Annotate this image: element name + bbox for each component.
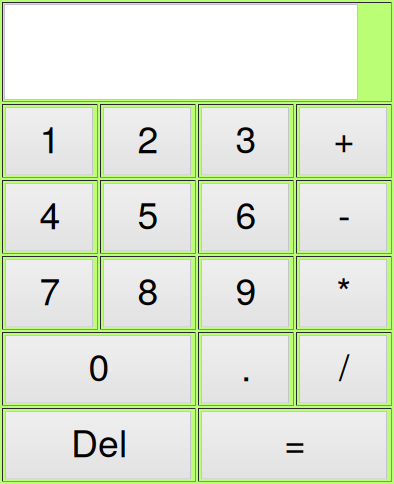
staticText: . (241, 338, 251, 392)
staticText: = (284, 414, 306, 468)
button[interactable]: 1 (0, 0, 394, 484)
staticText: 7 (39, 262, 60, 316)
button[interactable]: 5 (0, 0, 394, 484)
button[interactable]: / (0, 0, 394, 484)
staticText: 9 (235, 262, 256, 316)
staticText: 2 (137, 110, 158, 164)
button[interactable]: * (0, 0, 394, 484)
button[interactable]: 7 (0, 0, 394, 484)
button[interactable]: + (0, 0, 394, 484)
button[interactable]: 9 (0, 0, 394, 484)
button[interactable]: 2 (0, 0, 394, 484)
staticText: - (338, 186, 350, 240)
button[interactable]: 8 (0, 0, 394, 484)
button[interactable]: 3 (0, 0, 394, 484)
button[interactable]: 4 (0, 0, 394, 484)
staticText: 0 (88, 338, 109, 392)
button[interactable]: - (0, 0, 394, 484)
staticText: 6 (235, 186, 256, 240)
staticText: 5 (137, 186, 158, 240)
staticText: / (339, 338, 349, 392)
staticText: 8 (137, 262, 158, 316)
button[interactable]: 6 (0, 0, 394, 484)
button[interactable]: 0 (0, 0, 394, 484)
staticText: Del (71, 414, 127, 468)
staticText: 1 (39, 110, 60, 164)
button[interactable]: = (0, 0, 394, 484)
staticText: 3 (235, 110, 256, 164)
staticText: + (333, 110, 355, 164)
button[interactable]: Del (0, 0, 394, 484)
staticText: * (336, 262, 351, 316)
button[interactable]: . (0, 0, 394, 484)
staticText: 4 (39, 186, 60, 240)
